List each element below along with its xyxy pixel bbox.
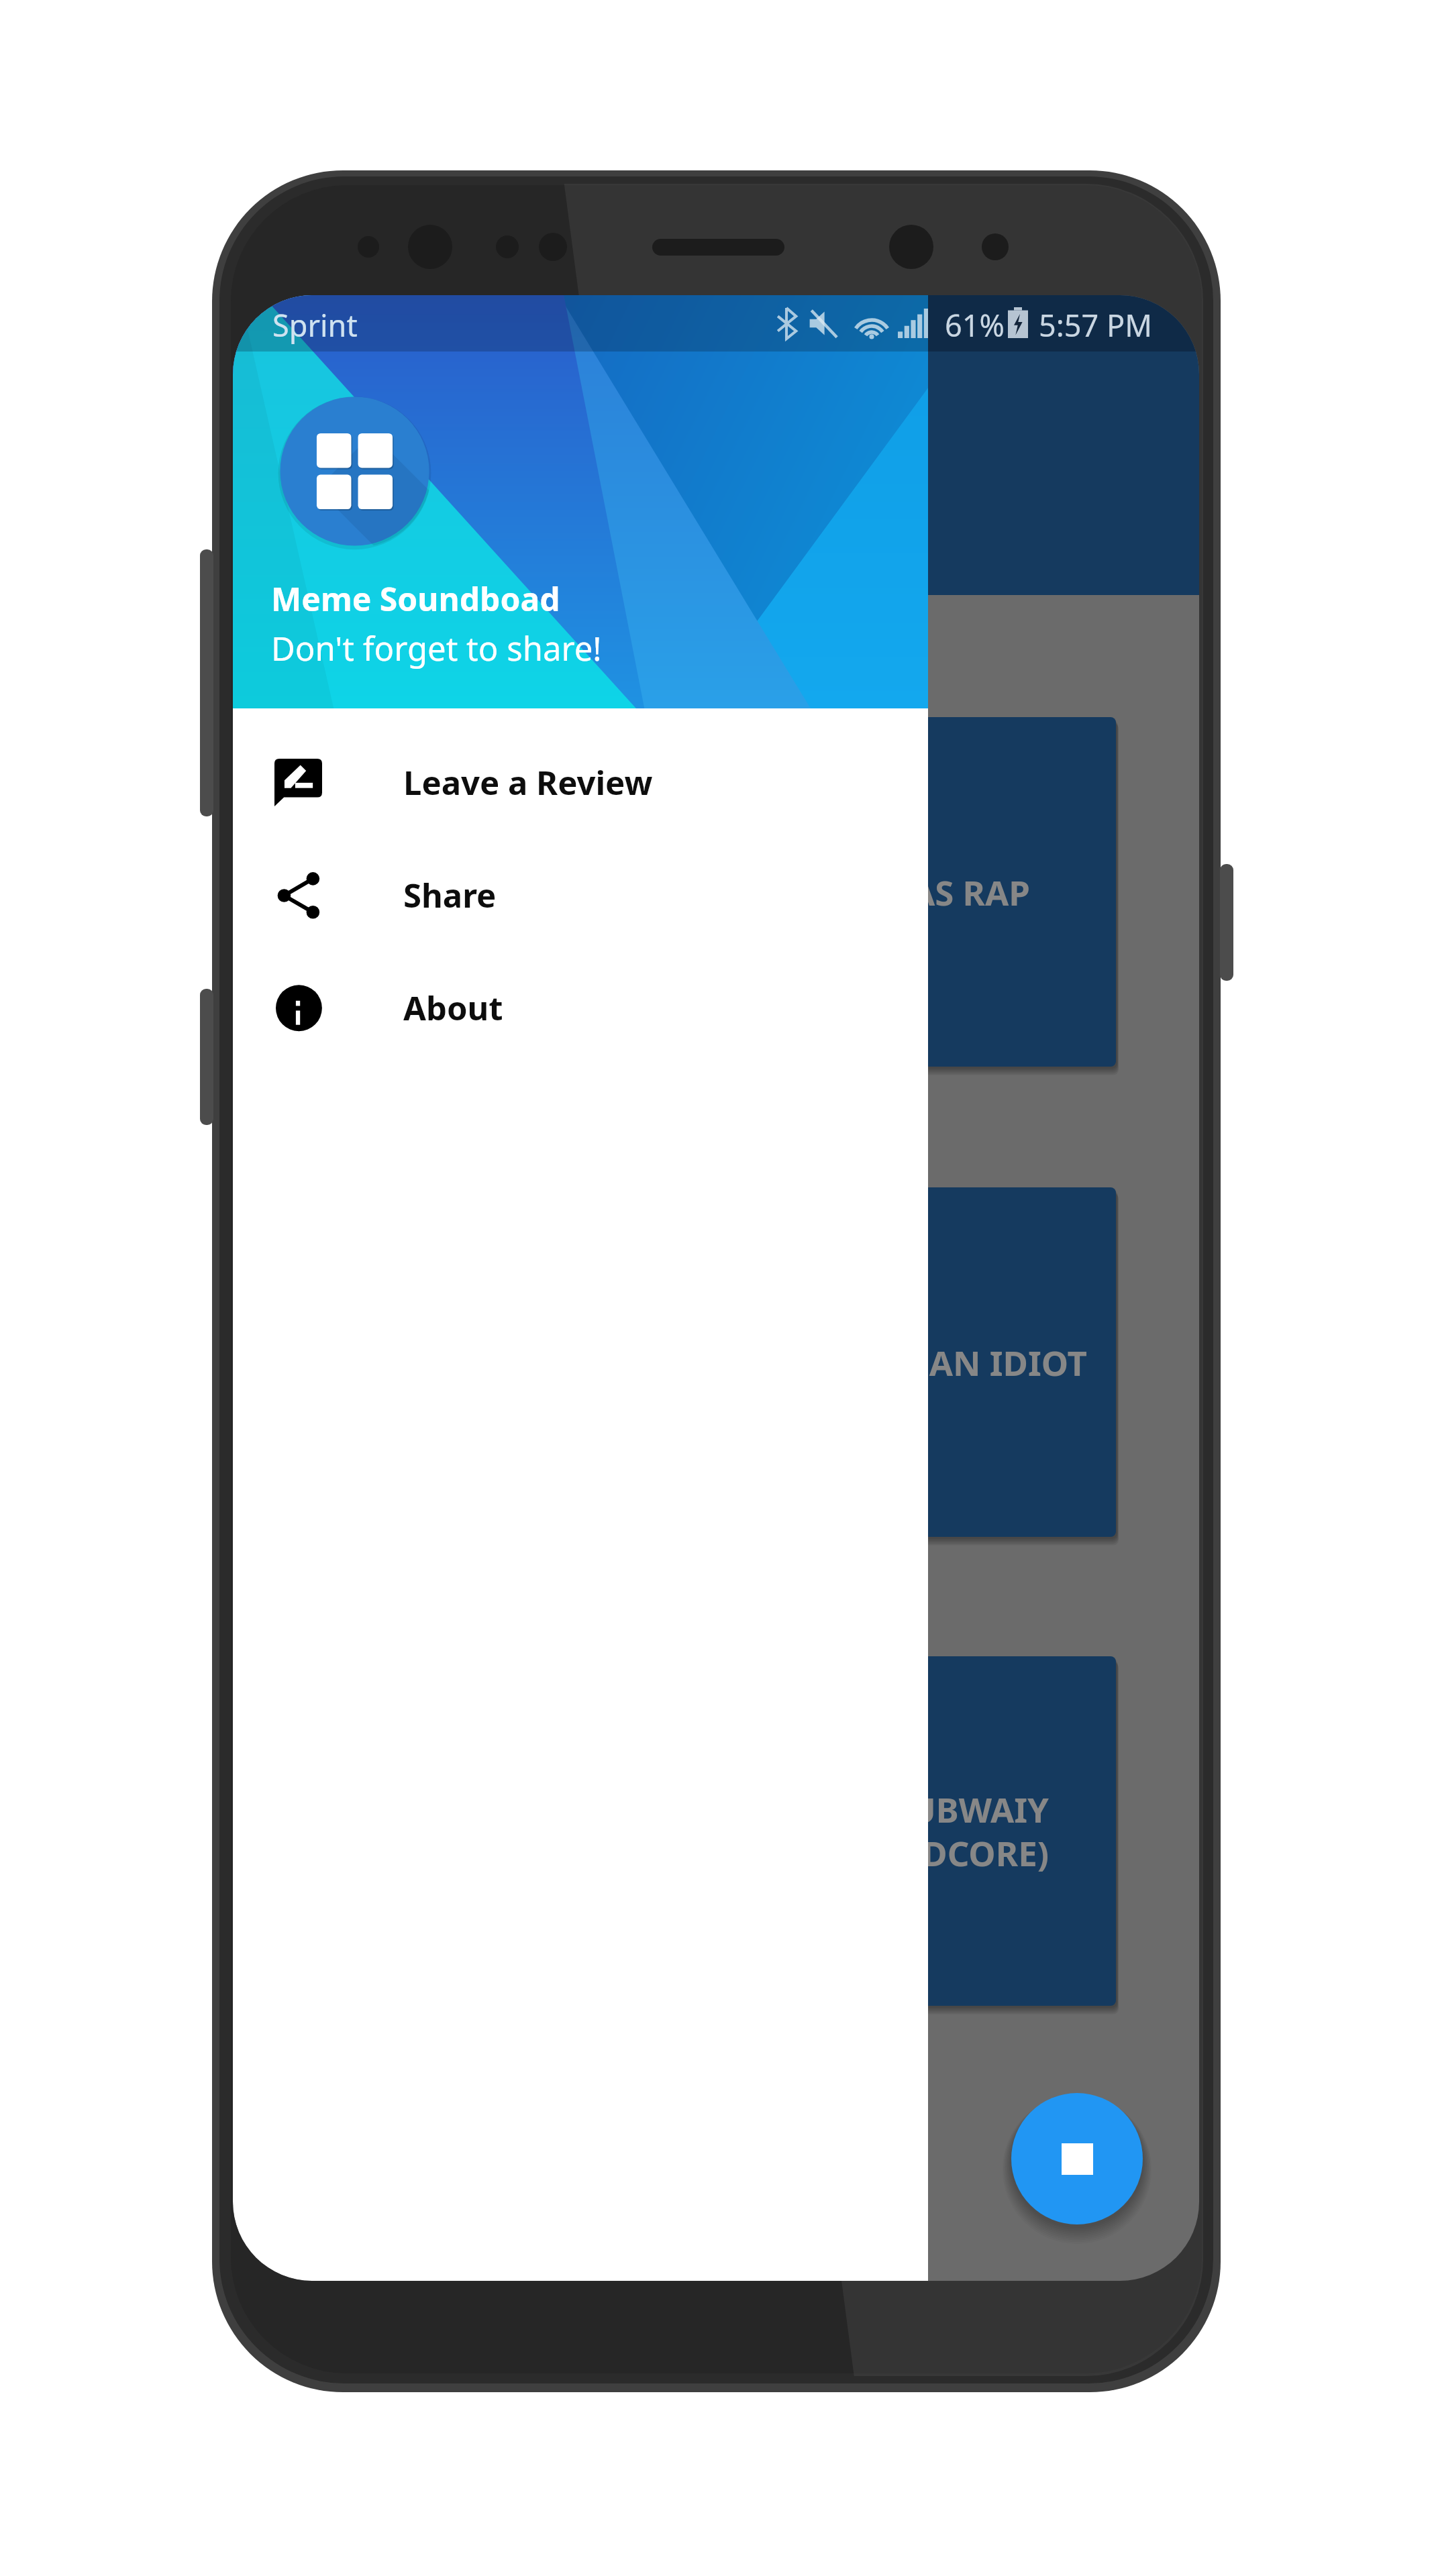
staticText: WHAT AN IDIOT [819, 1339, 1087, 1385]
staticText: About [403, 985, 503, 1030]
staticText: CHRISTMAS RAP [756, 869, 1030, 915]
staticText: Share [403, 873, 497, 918]
staticText: SUBWAIY (HARDCORE) [838, 1786, 1049, 1876]
button[interactable]: Leave a Review [233, 726, 928, 839]
staticText: 61% [945, 305, 1005, 345]
button[interactable]: Close navigation drawer [928, 295, 1199, 2281]
button[interactable]: SUBWAIY (HARDCORE) [270, 1656, 1116, 2006]
button[interactable]: Share [233, 839, 928, 951]
staticText: Don't forget to share! [271, 626, 602, 671]
button[interactable]: Stop playback [1011, 2093, 1143, 2224]
button[interactable]: About [233, 951, 928, 1064]
button[interactable]: CHRISTMAS RAP [270, 717, 1116, 1067]
staticText: Sprint [272, 305, 358, 345]
button[interactable]: WHAT AN IDIOT [270, 1187, 1116, 1537]
staticText: Leave a Review [403, 760, 653, 805]
staticText: Meme Soundboad [271, 577, 560, 621]
staticText: 5:57 PM [1039, 305, 1153, 345]
